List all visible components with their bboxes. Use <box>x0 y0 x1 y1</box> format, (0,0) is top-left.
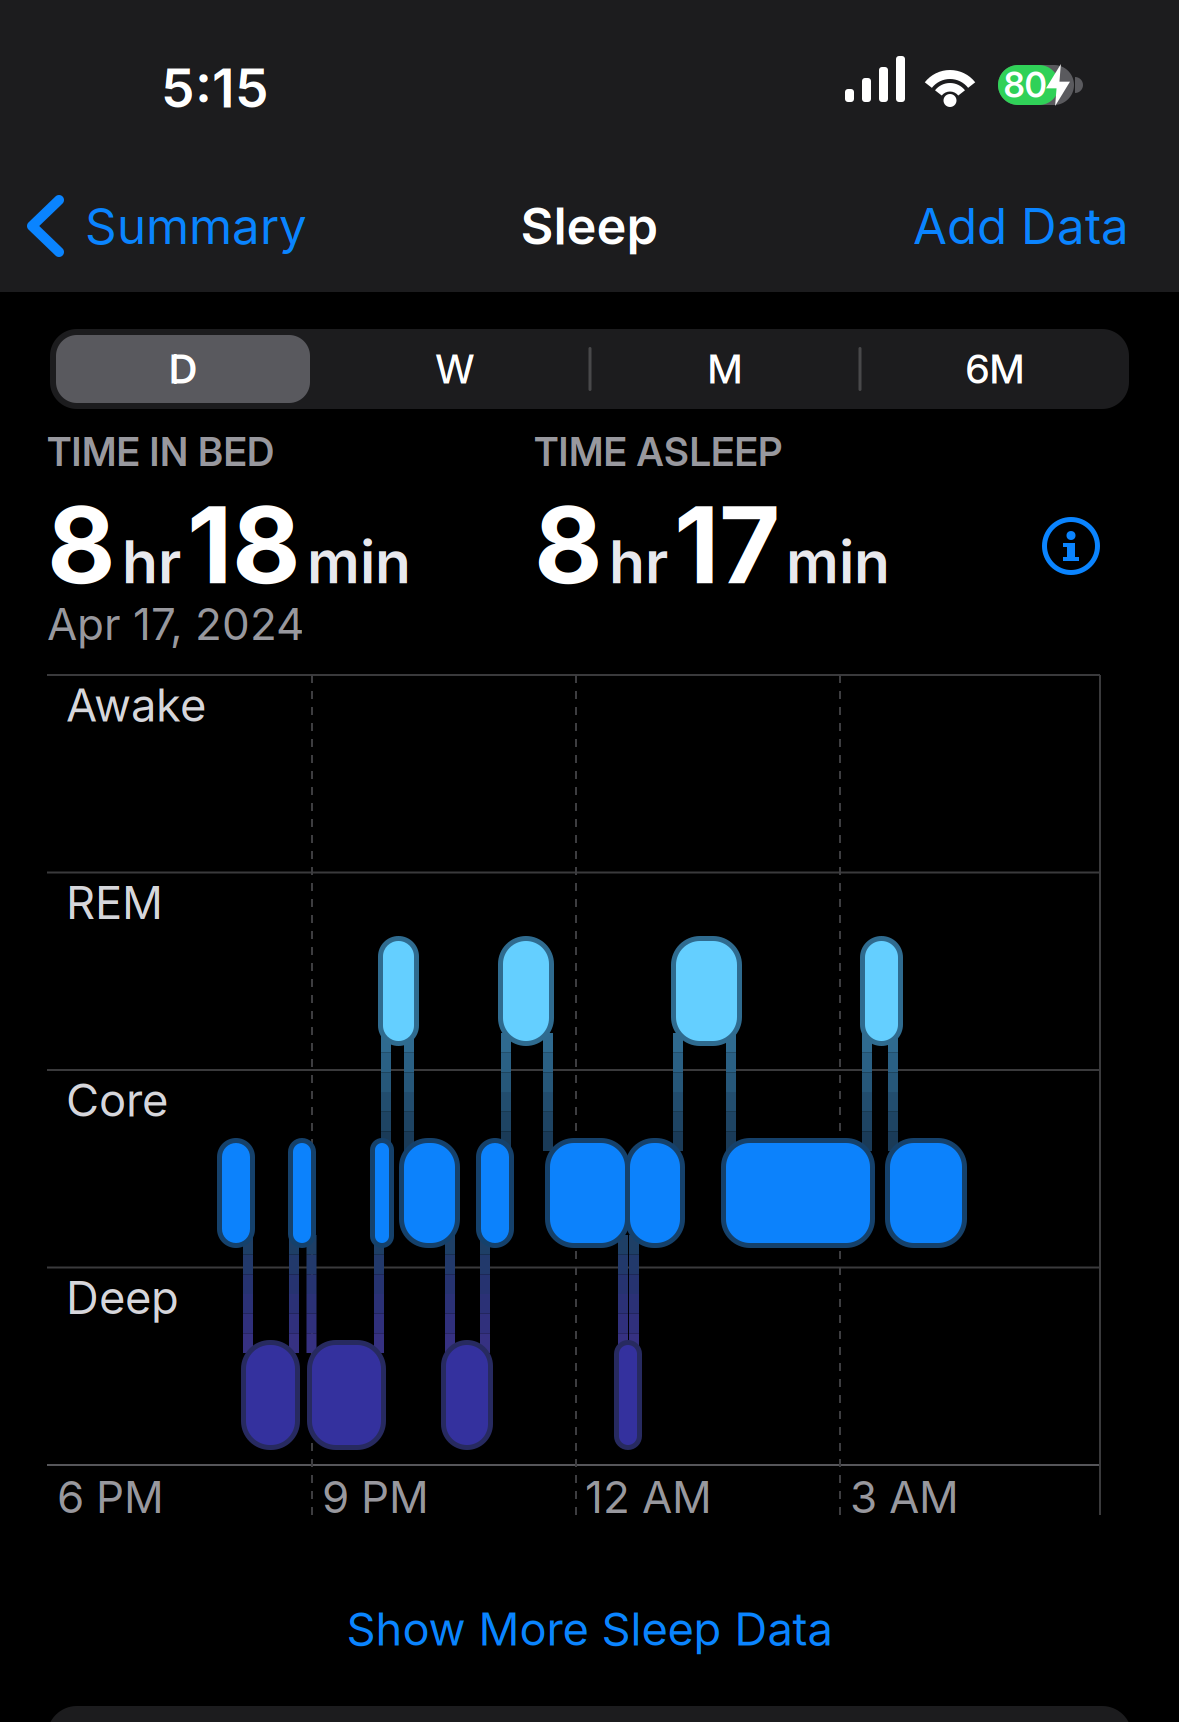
button[interactable]: 6M <box>895 335 1095 403</box>
button[interactable]: D <box>56 335 310 403</box>
button[interactable]: W <box>355 335 555 403</box>
staticText: Add Data <box>913 197 1129 255</box>
staticText: Apr 17, 2024 <box>47 598 304 650</box>
staticText: TIME IN BED <box>47 429 274 475</box>
staticText: M <box>707 345 742 393</box>
staticText: min <box>786 527 890 597</box>
staticText: 80 <box>1003 65 1046 105</box>
button[interactable]: M <box>625 335 825 403</box>
button[interactable]: Show More Sleep Data <box>346 1602 832 1656</box>
staticText: Summary <box>85 197 307 255</box>
staticText: TIME ASLEEP <box>534 429 782 475</box>
staticText: 3 AM <box>850 1471 959 1523</box>
staticText: 8 <box>47 483 116 607</box>
staticText: REM <box>66 876 163 929</box>
staticText: 18 <box>187 483 301 607</box>
staticText: 6 PM <box>57 1471 164 1523</box>
button[interactable]: Add Data <box>913 197 1129 255</box>
staticText: W <box>435 345 474 393</box>
staticText: Deep <box>66 1271 179 1324</box>
staticText: Awake <box>66 678 206 732</box>
staticText: 17 <box>674 483 780 607</box>
button[interactable] <box>1043 518 1099 574</box>
staticText: Sleep <box>520 196 658 256</box>
staticText: Show More Sleep Data <box>346 1602 832 1656</box>
button[interactable]: Summary <box>32 197 307 255</box>
staticText: hr <box>122 527 181 597</box>
staticText: hr <box>609 527 668 597</box>
staticText: 5:15 <box>161 56 269 119</box>
staticText: 9 PM <box>322 1471 429 1523</box>
staticText: D <box>169 345 197 393</box>
staticText: 8 <box>534 483 603 607</box>
staticText: 6M <box>965 345 1024 393</box>
staticText: 12 AM <box>585 1471 712 1523</box>
staticText: Core <box>66 1073 168 1127</box>
staticText: min <box>307 527 411 597</box>
